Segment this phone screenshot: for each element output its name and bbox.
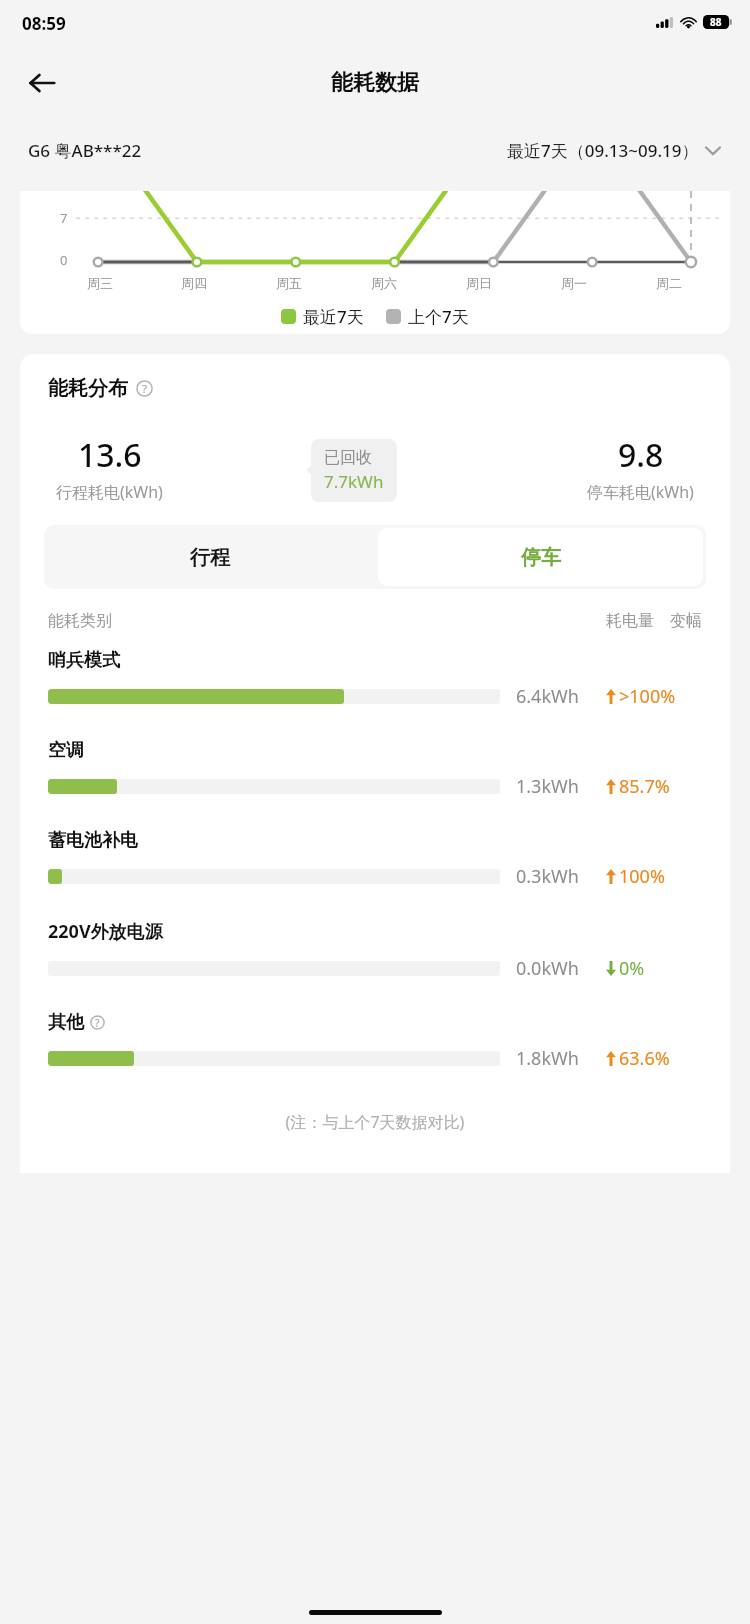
staticText: 周五 [276, 275, 302, 291]
staticText: 行程 [190, 545, 230, 570]
staticText: 最近7天（09.13~09.19） [507, 139, 699, 162]
staticText: 7.7kWh [324, 470, 384, 493]
staticText: 100% [619, 864, 665, 889]
staticText: ? [95, 1016, 100, 1030]
staticText: 0.3kWh [516, 864, 606, 889]
staticText: 耗电量 [606, 611, 654, 631]
button[interactable]: 行程 [44, 525, 375, 589]
button[interactable]: 最近7天（09.13~09.19） [507, 139, 720, 162]
staticText: 1.8kWh [516, 1046, 606, 1071]
staticText: 周二 [656, 275, 682, 291]
staticText: (注：与上个7天数据对比) [20, 1111, 730, 1133]
staticText: 哨兵模式 [48, 649, 120, 672]
staticText: 0.0kWh [516, 956, 606, 981]
staticText: 周四 [181, 275, 207, 291]
button[interactable]: 220V外放电源 [20, 919, 730, 1011]
button[interactable]: 能耗分布 [48, 376, 153, 401]
staticText: 其他 [48, 1011, 84, 1034]
staticText: 6.4kWh [516, 684, 606, 709]
staticText: 周六 [371, 275, 397, 291]
button[interactable]: 停车 [378, 528, 703, 586]
staticText: 85.7% [619, 774, 670, 799]
staticText: 变幅 [670, 611, 702, 631]
staticText: 0 [60, 251, 68, 269]
staticText: ? [142, 381, 148, 397]
staticText: 周日 [466, 275, 492, 291]
staticText: 停车 [521, 545, 561, 570]
staticText: 1.3kWh [516, 774, 606, 799]
button[interactable]: Back [14, 55, 70, 111]
staticText: 88 [710, 15, 722, 29]
staticText: 已回收 [324, 448, 372, 468]
staticText: 最近7天 [303, 305, 364, 328]
staticText: 能耗类别 [48, 611, 112, 631]
staticText: 0% [619, 956, 645, 981]
staticText: 63.6% [619, 1046, 670, 1071]
staticText: 能耗数据 [331, 69, 419, 97]
staticText: 7 [60, 209, 68, 227]
button[interactable]: 空调 [20, 739, 730, 829]
staticText: 停车耗电(kWh) [587, 481, 694, 503]
staticText: 220V外放电源 [48, 919, 163, 944]
staticText: 行程耗电(kWh) [56, 481, 163, 503]
staticText: 13.6 [78, 433, 142, 477]
button[interactable]: 蓄电池补电 [20, 829, 730, 919]
staticText: 08:59 [22, 12, 66, 35]
staticText: 蓄电池补电 [48, 829, 138, 852]
staticText: 周三 [87, 275, 113, 291]
staticText: >100% [619, 684, 676, 709]
staticText: 能耗分布 [48, 376, 128, 401]
staticText: 周一 [561, 275, 587, 291]
button[interactable]: G6 粤AB***22 [28, 139, 142, 162]
button[interactable]: 哨兵模式 [20, 649, 730, 739]
staticText: 上个7天 [408, 305, 469, 328]
button[interactable]: 其他 [20, 1011, 730, 1101]
staticText: 9.8 [618, 433, 664, 477]
staticText: 空调 [48, 739, 84, 762]
